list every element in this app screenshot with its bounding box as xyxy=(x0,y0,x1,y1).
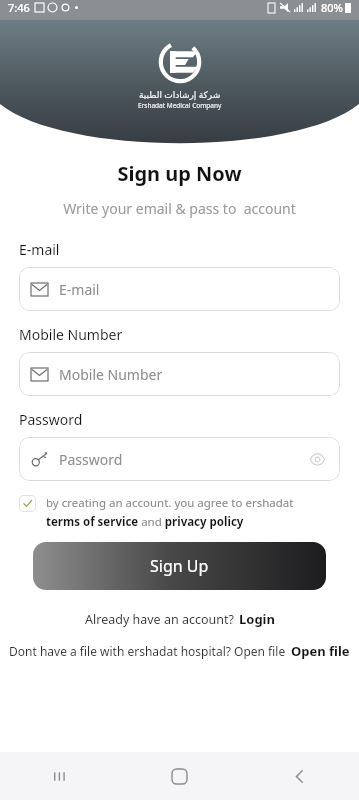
button[interactable]: Sign Up xyxy=(33,542,326,590)
staticText: Password xyxy=(19,410,83,429)
button[interactable]: by creating an account. you agree to ers… xyxy=(19,495,340,530)
button[interactable]: E-mail xyxy=(19,267,340,311)
button[interactable]: Show password xyxy=(306,448,328,470)
staticText: Ershadat Medical Company xyxy=(138,101,222,110)
button[interactable]: Open file xyxy=(291,642,350,660)
staticText: شركة إرشادات الطبية xyxy=(139,88,221,100)
button[interactable]: Recents xyxy=(0,752,119,800)
staticText: E-mail xyxy=(19,240,60,259)
staticText: Login xyxy=(239,610,275,628)
staticText: Sign up Now xyxy=(0,160,359,187)
staticText: Open file xyxy=(291,642,350,660)
staticText: E-mail xyxy=(59,280,100,299)
button[interactable]: Login xyxy=(239,610,275,628)
staticText: Mobile Number xyxy=(59,365,163,384)
staticText: 80% xyxy=(321,0,343,15)
staticText: 7:46 xyxy=(8,0,30,15)
staticText: Mobile Number xyxy=(19,325,123,344)
staticText: Dont have a file with ershadat hospital?… xyxy=(9,643,286,659)
staticText: Sign Up xyxy=(150,555,209,577)
staticText: Write your email & pass to account xyxy=(0,199,359,218)
staticText: terms of service and privacy policy xyxy=(46,514,244,530)
button[interactable]: Mobile Number xyxy=(19,352,340,396)
staticText: Already have an account? xyxy=(85,611,234,628)
button[interactable]: Password xyxy=(19,437,340,481)
staticText: by creating an account. you agree to ers… xyxy=(46,495,294,511)
staticText: Password xyxy=(59,450,123,469)
button[interactable]: Home xyxy=(119,752,239,800)
button[interactable]: Back xyxy=(239,752,359,800)
